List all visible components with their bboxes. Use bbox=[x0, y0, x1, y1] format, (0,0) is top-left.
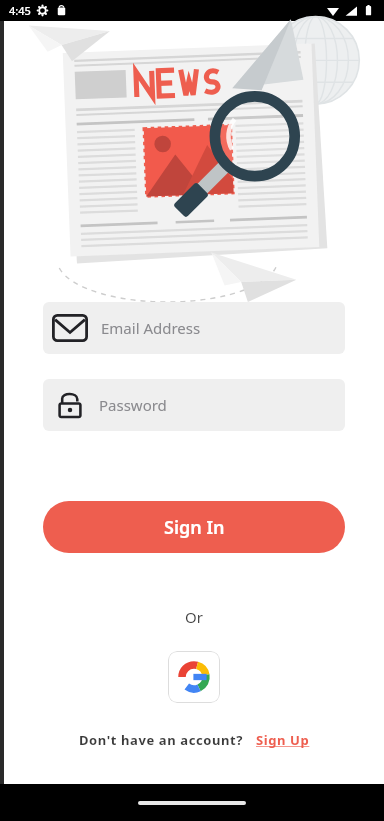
button[interactable]: Password bbox=[43, 379, 345, 431]
button[interactable]: Email Address bbox=[43, 302, 345, 354]
staticText: Email Address bbox=[101, 318, 201, 338]
staticText: Sign In bbox=[164, 515, 225, 540]
staticText: Or bbox=[185, 607, 203, 627]
staticText: Don't have an account? bbox=[79, 731, 244, 749]
button[interactable]: Sign In bbox=[43, 501, 345, 553]
staticText: Password bbox=[99, 395, 167, 415]
staticText: 4:45 bbox=[9, 3, 31, 18]
button[interactable]: Sign Up bbox=[256, 731, 310, 749]
staticText: Sign Up bbox=[256, 731, 310, 749]
button[interactable]: Sign in with Google bbox=[168, 651, 220, 703]
